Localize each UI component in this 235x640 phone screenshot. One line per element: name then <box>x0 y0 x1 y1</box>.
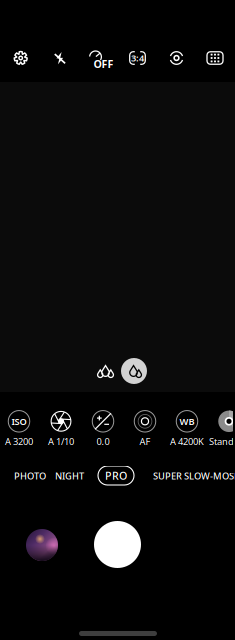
button[interactable]: Wide lens <box>121 358 147 384</box>
button[interactable]: ISO <box>0 409 40 449</box>
button[interactable]: Aspect ratio 3 by 4 <box>120 43 154 73</box>
staticText: SUPER SLOW-MO <box>153 470 229 482</box>
button[interactable]: SUPER SLOW-MO <box>153 466 229 486</box>
button[interactable]: PHOTO <box>14 466 46 486</box>
button[interactable]: WB <box>166 409 208 449</box>
button[interactable]: Take photo <box>94 521 141 568</box>
button[interactable]: Standard <box>208 409 235 449</box>
staticText: 0.0 <box>96 435 109 448</box>
button[interactable]: SL <box>229 466 235 486</box>
button[interactable]: NIGHT <box>55 466 84 486</box>
staticText: A 4200K <box>170 435 204 448</box>
button[interactable]: Ultra wide lens <box>93 358 119 384</box>
button[interactable]: Focus <box>159 43 193 73</box>
staticText: AF <box>139 435 150 448</box>
staticText: PRO <box>105 468 127 483</box>
button[interactable]: Settings <box>4 43 38 73</box>
button[interactable]: Gallery <box>26 529 58 561</box>
button[interactable]: More options <box>198 43 232 73</box>
staticText: OFF <box>94 57 114 71</box>
button[interactable]: Flash off <box>43 43 77 73</box>
button[interactable]: A 1/10 <box>40 409 82 449</box>
staticText: A 3200 <box>5 435 33 448</box>
staticText: Standard <box>209 435 235 448</box>
staticText: A 1/10 <box>48 435 74 448</box>
staticText: NIGHT <box>55 470 84 482</box>
staticText: 3:4 <box>131 52 144 64</box>
button[interactable]: PRO <box>98 466 134 485</box>
staticText: WB <box>179 415 194 427</box>
staticText: ISO <box>11 415 26 427</box>
staticText: PHOTO <box>14 470 46 482</box>
staticText: SL <box>229 470 235 482</box>
button[interactable]: AF <box>124 409 166 449</box>
button[interactable]: Timer off <box>82 43 116 73</box>
button[interactable]: 0.0 <box>82 409 124 449</box>
